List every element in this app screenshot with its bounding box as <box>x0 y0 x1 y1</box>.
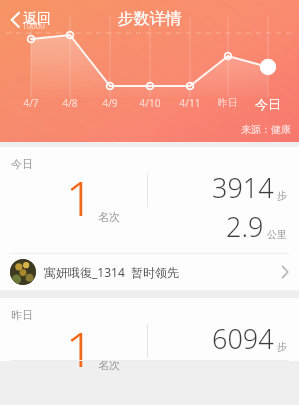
staticText: 寓妍哦復_1314 暂时领先 <box>44 264 180 280</box>
staticText: 步数详情 <box>0 9 299 29</box>
staticText: 步 <box>277 189 287 202</box>
staticText: 公里 <box>267 228 287 241</box>
staticText: 今日 <box>11 157 33 171</box>
staticText: 今日 <box>250 96 286 112</box>
staticText: 1 <box>66 316 94 378</box>
staticText: 名次 <box>98 210 120 224</box>
staticText: 1 <box>66 165 94 230</box>
staticText: 昨日 <box>210 96 246 109</box>
staticText: 名次 <box>98 358 120 372</box>
staticText: 返回 <box>23 10 51 28</box>
button[interactable]: 寓妍哦復_1314 暂时领先 <box>0 254 299 290</box>
staticText: 4/8 <box>52 96 88 110</box>
button[interactable]: 返回 <box>6 8 55 30</box>
staticText: 4/10 <box>132 96 168 110</box>
staticText: 3914 <box>212 169 274 206</box>
staticText: 来源：健康 <box>241 123 291 136</box>
staticText: 2.9 <box>226 208 264 245</box>
other: 查看排行 <box>281 265 289 279</box>
staticText: 10000 <box>22 20 45 31</box>
staticText: 步 <box>277 340 287 353</box>
staticText: 4/7 <box>13 96 49 110</box>
staticText: 昨日 <box>11 308 33 322</box>
staticText: 6094 <box>212 320 274 357</box>
staticText: 4/11 <box>172 96 208 110</box>
staticText: 4/9 <box>92 96 128 110</box>
